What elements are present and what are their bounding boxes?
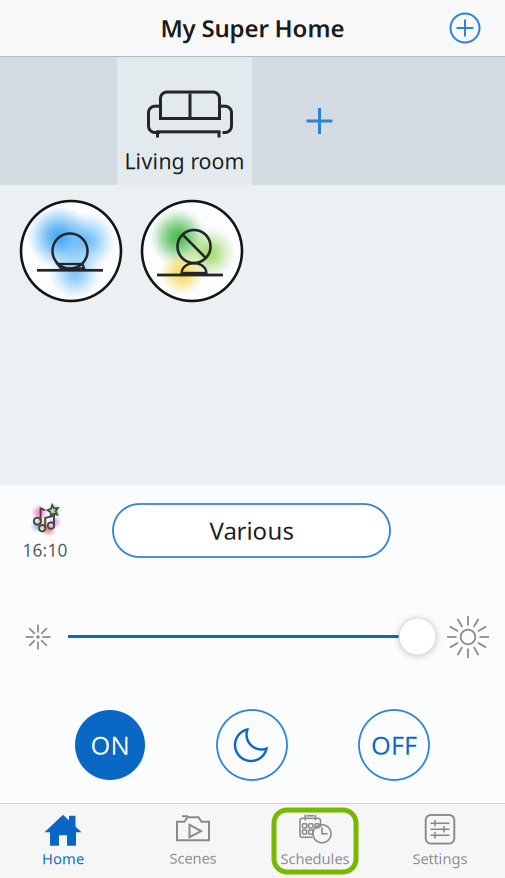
button[interactable]: Schedules [272,806,358,876]
button[interactable]: OFF [359,710,429,780]
button[interactable]: ON [75,710,145,780]
button[interactable]: Ceiling lamp, on [21,201,121,301]
staticText: ON [90,728,129,762]
staticText: Scenes [169,848,216,868]
button[interactable]: Add room [252,57,387,185]
button[interactable]: Home [0,806,126,876]
staticText: Living room [124,147,244,175]
button[interactable]: Various [113,504,390,557]
button[interactable]: Settings [377,806,503,876]
staticText: Schedules [280,849,349,868]
button[interactable]: Add [443,6,487,50]
staticText: Various [209,515,293,546]
staticText: Home [42,849,84,868]
staticText: OFF [371,728,417,762]
button[interactable]: Living room [117,57,252,185]
button[interactable]: Night mode [217,710,287,780]
staticText: My Super Home [160,12,344,44]
staticText: 16:10 [22,538,67,561]
button[interactable]: Scenes [130,806,256,876]
staticText: Settings [412,849,467,868]
button[interactable]: Table lamp, off [142,201,242,301]
